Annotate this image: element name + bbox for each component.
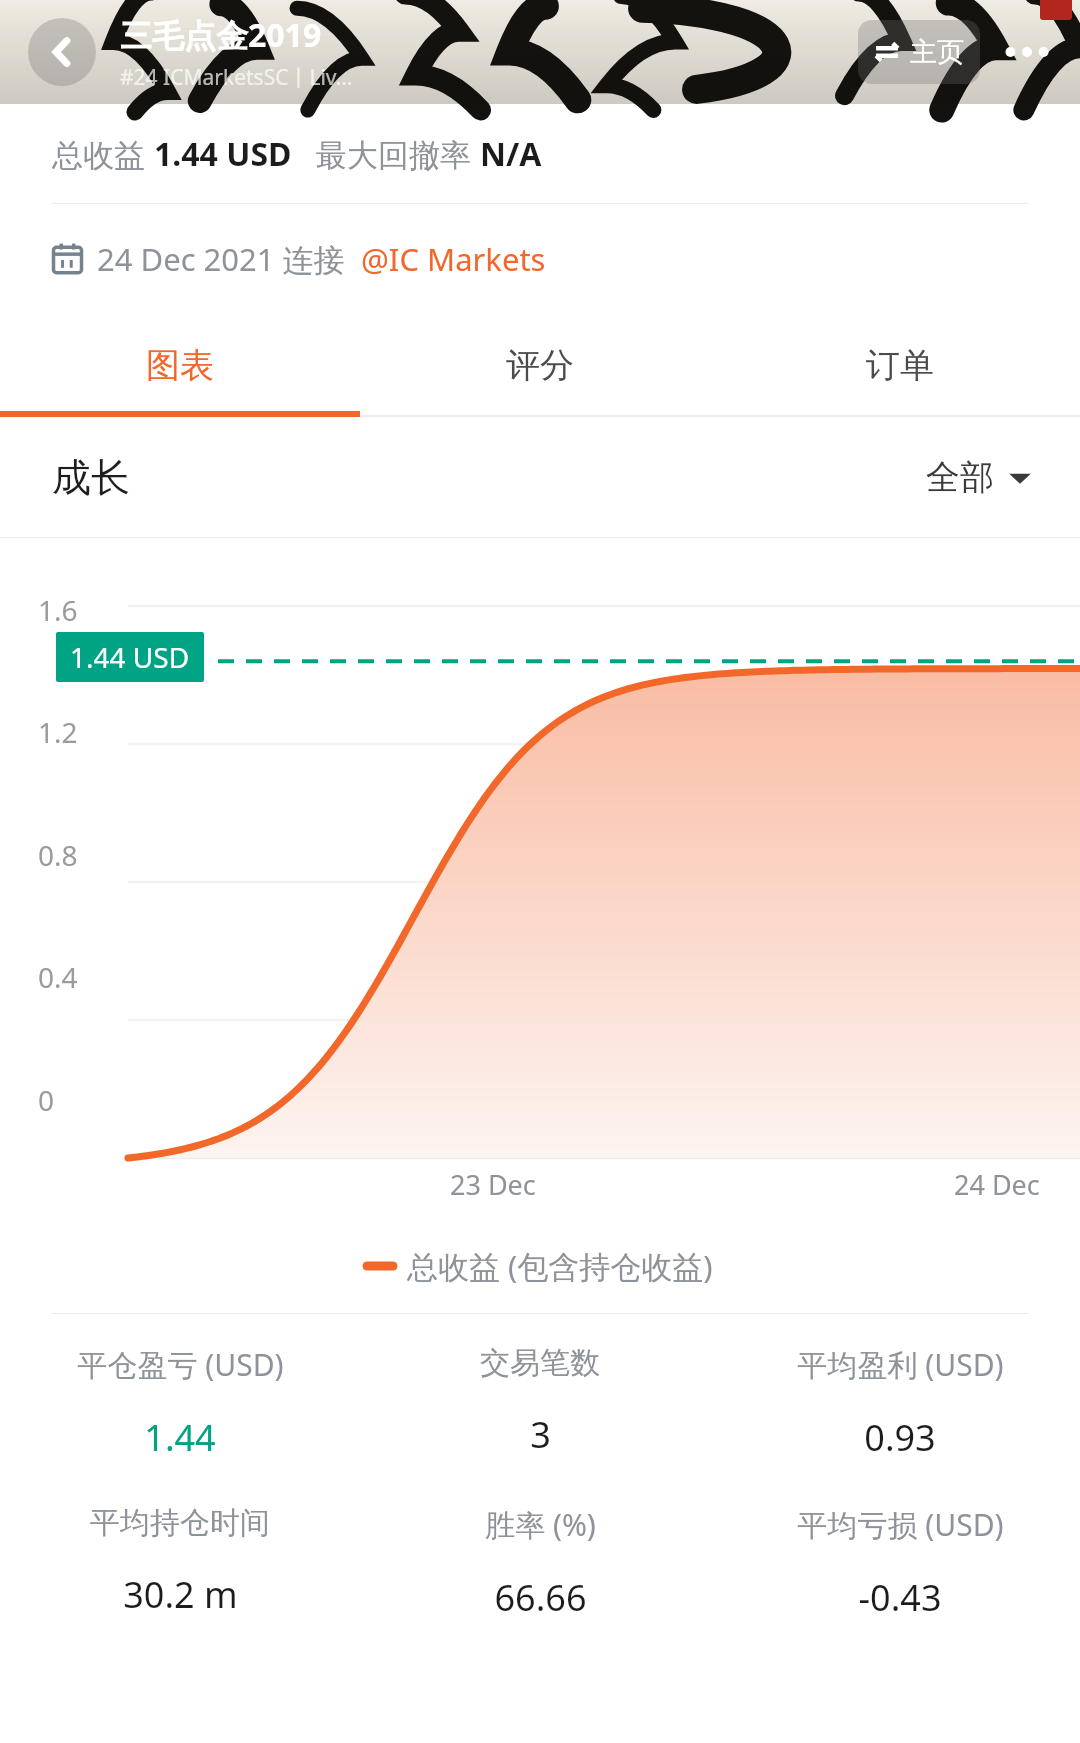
staticText: 0.4 xyxy=(38,958,78,996)
staticText: N/A xyxy=(480,132,542,176)
staticText: 3 xyxy=(530,1410,551,1459)
button[interactable]: 平仓盈亏 (USD) xyxy=(0,1344,360,1462)
staticText: 交易笔数 xyxy=(480,1344,600,1382)
staticText: 胜率 (%) xyxy=(485,1504,596,1545)
staticText: 图表 xyxy=(146,344,214,387)
staticText: 三毛点金2019 xyxy=(120,13,322,57)
staticText: 1.2 xyxy=(38,713,78,751)
staticText: 1.44 xyxy=(144,1413,216,1462)
staticText: #24 ICMarketsSC丨Liv… xyxy=(120,63,353,92)
button[interactable]: @IC Markets xyxy=(361,238,546,280)
button[interactable]: 交易笔数 xyxy=(360,1344,720,1459)
staticText: 评分 xyxy=(506,344,574,387)
staticText: 24 Dec 2021 连接 xyxy=(97,238,361,280)
staticText: 成长 xyxy=(52,453,130,502)
button[interactable]: 主页 xyxy=(858,20,980,84)
staticText: 1.44 USD xyxy=(70,638,190,676)
button[interactable]: 全部 xyxy=(926,456,1032,499)
button[interactable]: 平均持仓时间 xyxy=(0,1504,360,1619)
button[interactable]: More options xyxy=(992,17,1062,87)
staticText: 1.44 USD xyxy=(154,132,292,176)
button[interactable]: 胜率 (%) xyxy=(360,1504,720,1622)
button[interactable]: 平均盈利 (USD) xyxy=(720,1344,1080,1462)
staticText: 0.93 xyxy=(864,1413,936,1462)
staticText: 23 Dec xyxy=(450,1166,536,1203)
staticText: 总收益 xyxy=(52,133,154,175)
staticText: 全部 xyxy=(926,456,994,499)
staticText: 平均盈利 (USD) xyxy=(797,1344,1004,1385)
staticText: -0.43 xyxy=(858,1573,942,1622)
staticText: 总收益 (包含持仓收益) xyxy=(407,1245,713,1287)
staticText: 0.8 xyxy=(38,836,78,874)
button[interactable]: 图表 xyxy=(0,313,360,417)
staticText: 24 Dec xyxy=(954,1166,1040,1203)
button[interactable]: 平均亏损 (USD) xyxy=(720,1504,1080,1622)
staticText: @IC Markets xyxy=(361,238,546,280)
staticText: 最大回撤率 xyxy=(316,133,480,175)
staticText: 66.66 xyxy=(494,1573,587,1622)
staticText: 订单 xyxy=(866,344,934,387)
staticText: 主页 xyxy=(910,35,964,69)
staticText: 0 xyxy=(38,1081,55,1119)
staticText: 30.2 m xyxy=(123,1570,238,1619)
button[interactable]: 评分 xyxy=(360,313,720,417)
button[interactable]: 订单 xyxy=(720,313,1080,417)
staticText: 1.6 xyxy=(38,591,78,629)
button[interactable]: Back xyxy=(28,18,96,86)
staticText: 平均亏损 (USD) xyxy=(797,1504,1004,1545)
staticText: 平仓盈亏 (USD) xyxy=(77,1344,284,1385)
staticText: 平均持仓时间 xyxy=(90,1504,270,1542)
